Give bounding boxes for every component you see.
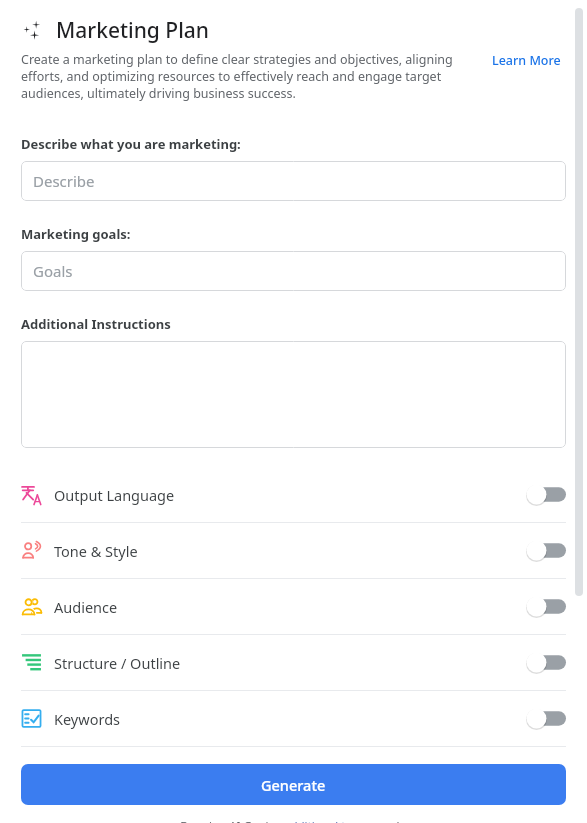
button[interactable]: Tone & Style [0,523,587,578]
button[interactable]: Goals [21,251,566,291]
button[interactable]: Describe [21,161,566,201]
staticText: Marketing goals: [21,225,131,243]
staticText: Generate [261,775,326,795]
staticText: Learn More [492,52,561,69]
staticText: Audience [54,597,118,617]
staticText: Tone & Style [54,541,138,561]
staticText: Goals [33,261,73,281]
staticText: By using AI Genius additional terms appl… [180,818,408,823]
staticText: Describe what you are marketing: [21,135,241,153]
staticText: Output Language [54,485,175,505]
button[interactable]: Keywords [0,691,587,746]
staticText: Describe [33,171,95,191]
button[interactable]: Learn More [490,51,563,70]
button[interactable]: Generate [21,764,566,805]
staticText: Create a marketing plan to define clear … [21,51,487,102]
button[interactable]: Output Language [0,467,587,522]
staticText: Keywords [54,709,120,729]
staticText: Additional Instructions [21,315,171,333]
staticText: Structure / Outline [54,653,181,673]
button[interactable]: Audience [0,579,587,634]
button[interactable]: Structure / Outline [0,635,587,690]
staticText: Marketing Plan [56,16,209,45]
button[interactable] [21,341,566,448]
